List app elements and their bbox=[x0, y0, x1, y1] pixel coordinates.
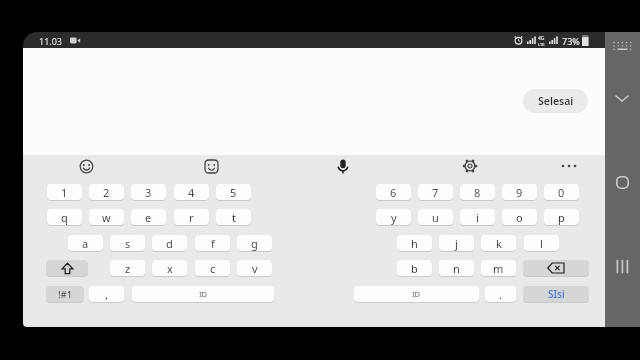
staticText: i bbox=[476, 210, 479, 225]
button[interactable]: n bbox=[439, 260, 474, 276]
staticText: , bbox=[105, 287, 108, 302]
button[interactable]: 9 bbox=[502, 184, 537, 200]
button[interactable] bbox=[79, 159, 94, 174]
button[interactable]: m bbox=[481, 260, 516, 276]
button[interactable] bbox=[204, 159, 219, 174]
button[interactable]: 2 bbox=[89, 184, 124, 200]
button[interactable]: d bbox=[152, 235, 187, 251]
button[interactable] bbox=[46, 260, 88, 276]
staticText: 5 bbox=[230, 185, 237, 200]
staticText: 8 bbox=[474, 185, 481, 200]
button[interactable]: b bbox=[397, 260, 432, 276]
staticText: s bbox=[125, 236, 131, 251]
button[interactable]: ID bbox=[354, 286, 479, 302]
staticText: y bbox=[391, 210, 397, 225]
button[interactable]: w bbox=[89, 209, 124, 225]
staticText: 1 bbox=[61, 185, 68, 200]
staticText: n bbox=[453, 261, 460, 276]
staticText: 73% bbox=[562, 35, 580, 47]
button[interactable]: u bbox=[418, 209, 453, 225]
button[interactable] bbox=[615, 94, 629, 103]
staticText: m bbox=[493, 261, 504, 276]
staticText: q bbox=[61, 210, 68, 225]
button[interactable]: 0 bbox=[544, 184, 579, 200]
staticText: v bbox=[252, 261, 258, 276]
button[interactable]: i bbox=[460, 209, 495, 225]
button[interactable] bbox=[561, 162, 577, 170]
staticText: !#1 bbox=[58, 288, 73, 301]
button[interactable] bbox=[616, 176, 629, 189]
staticText: Selesai bbox=[538, 94, 574, 108]
staticText: 2 bbox=[103, 185, 110, 200]
button[interactable]: x bbox=[152, 260, 187, 276]
button[interactable]: e bbox=[131, 209, 166, 225]
staticText: t bbox=[232, 210, 236, 225]
button[interactable]: 4 bbox=[174, 184, 209, 200]
staticText: LTE bbox=[538, 42, 545, 47]
staticText: h bbox=[411, 236, 418, 251]
staticText: x bbox=[167, 261, 173, 276]
staticText: e bbox=[145, 210, 152, 225]
button[interactable]: v bbox=[237, 260, 272, 276]
staticText: 4G bbox=[538, 35, 545, 42]
button[interactable]: j bbox=[439, 235, 474, 251]
button[interactable] bbox=[612, 41, 633, 52]
button[interactable]: h bbox=[397, 235, 432, 251]
button[interactable]: , bbox=[89, 286, 124, 302]
staticText: 9 bbox=[516, 185, 523, 200]
button[interactable]: z bbox=[110, 260, 145, 276]
staticText: 3 bbox=[145, 185, 152, 200]
button[interactable] bbox=[523, 260, 589, 276]
staticText: k bbox=[496, 236, 502, 251]
button[interactable]: 5 bbox=[216, 184, 251, 200]
staticText: 7 bbox=[432, 185, 439, 200]
button[interactable]: 1 bbox=[47, 184, 82, 200]
staticText: p bbox=[558, 210, 565, 225]
button[interactable]: p bbox=[544, 209, 579, 225]
button[interactable]: 6 bbox=[376, 184, 411, 200]
staticText: w bbox=[102, 210, 111, 225]
button[interactable]: q bbox=[47, 209, 82, 225]
button[interactable]: Selesai bbox=[523, 89, 588, 113]
staticText: z bbox=[125, 261, 131, 276]
button[interactable] bbox=[335, 159, 351, 175]
button[interactable]: ID bbox=[132, 286, 274, 302]
button[interactable]: . bbox=[485, 286, 516, 302]
staticText: ID bbox=[412, 289, 421, 299]
staticText: g bbox=[251, 236, 258, 251]
staticText: o bbox=[516, 210, 523, 225]
staticText: 4 bbox=[188, 185, 195, 200]
button[interactable]: l bbox=[524, 235, 559, 251]
staticText: l bbox=[540, 236, 543, 251]
staticText: . bbox=[499, 287, 502, 302]
button[interactable]: y bbox=[376, 209, 411, 225]
button[interactable]: SIsi bbox=[523, 286, 589, 302]
button[interactable]: f bbox=[195, 235, 230, 251]
staticText: d bbox=[166, 236, 173, 251]
button[interactable]: c bbox=[195, 260, 230, 276]
button[interactable]: s bbox=[110, 235, 145, 251]
button[interactable] bbox=[616, 260, 629, 273]
staticText: j bbox=[455, 236, 458, 251]
button[interactable]: o bbox=[502, 209, 537, 225]
staticText: c bbox=[210, 261, 216, 276]
button[interactable]: k bbox=[481, 235, 516, 251]
staticText: b bbox=[411, 261, 418, 276]
staticText: ID bbox=[199, 289, 208, 299]
staticText: SIsi bbox=[548, 287, 565, 301]
staticText: a bbox=[82, 236, 89, 251]
button[interactable] bbox=[462, 158, 478, 174]
staticText: 11.03 bbox=[39, 35, 63, 47]
button[interactable]: g bbox=[237, 235, 272, 251]
button[interactable]: 3 bbox=[131, 184, 166, 200]
staticText: 0 bbox=[558, 185, 565, 200]
button[interactable]: a bbox=[68, 235, 103, 251]
button[interactable]: t bbox=[216, 209, 251, 225]
button[interactable]: r bbox=[174, 209, 209, 225]
staticText: 6 bbox=[390, 185, 397, 200]
staticText: u bbox=[432, 210, 439, 225]
button[interactable]: !#1 bbox=[46, 286, 84, 302]
button[interactable]: 7 bbox=[418, 184, 453, 200]
staticText: r bbox=[189, 210, 194, 225]
button[interactable]: 8 bbox=[460, 184, 495, 200]
